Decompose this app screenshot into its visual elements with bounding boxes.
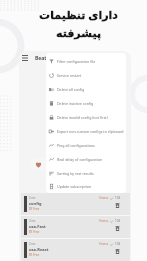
button[interactable]: Delete [114, 225, 121, 232]
button[interactable]: Delete invalid config (not first) [46, 110, 126, 124]
staticText: Service restart [57, 73, 82, 78]
staticText: 2 ms [29, 219, 36, 223]
staticText: IR Free [29, 253, 40, 257]
button[interactable]: Menu [20, 53, 30, 63]
button[interactable]: 2 ms [21, 239, 130, 261]
staticText: Export non-custom configs to clipboard [57, 129, 124, 134]
button[interactable]: Filter configuration file [46, 54, 126, 68]
button[interactable]: Delete inactive config [46, 96, 126, 110]
button[interactable]: Service restart [46, 68, 126, 82]
staticText: IR Free [29, 207, 40, 211]
staticText: 2 ms [29, 196, 36, 200]
staticText: Delete inactive config [57, 101, 94, 106]
staticText: Ping all configurations [57, 143, 95, 148]
staticText: Vmess [99, 219, 109, 223]
staticText: config [29, 201, 42, 206]
button[interactable]: Export non-custom configs to clipboard [46, 124, 126, 138]
staticText: Vmess [99, 242, 109, 246]
staticText: Real delay of configuration [57, 157, 103, 162]
staticText: Vmess [99, 196, 109, 200]
button[interactable]: Update subscription [46, 180, 126, 193]
button[interactable]: Delete [114, 248, 121, 255]
staticText: Delete all config [57, 87, 85, 92]
button[interactable]: Delete all config [46, 82, 126, 96]
staticText: Beat [35, 55, 47, 62]
staticText: usa-Fast [29, 224, 46, 229]
button[interactable]: Real delay of configuration [46, 152, 126, 166]
button[interactable]: 2 ms [21, 216, 130, 238]
staticText: Delete invalid config (not first) [57, 115, 108, 120]
staticText: 104 [115, 242, 121, 246]
staticText: Update subscription [57, 184, 92, 189]
staticText: 2 ms [29, 242, 36, 246]
staticText: Sorting by test results [57, 171, 94, 176]
button[interactable]: 2 ms [21, 193, 130, 215]
button[interactable]: Favourite [31, 158, 46, 170]
staticText: 104 [115, 219, 121, 223]
staticText: Filter configuration file [57, 59, 96, 64]
staticText: پیشرفته [5, 27, 147, 40]
staticText: usa-React [29, 247, 49, 252]
button[interactable]: Delete [114, 202, 121, 209]
staticText: IR Free [29, 230, 40, 234]
staticText: 104 [115, 196, 121, 200]
staticText: دارای تنظیمات [5, 7, 147, 22]
button[interactable]: Ping all configurations [46, 138, 126, 152]
button[interactable]: Sorting by test results [46, 166, 126, 180]
